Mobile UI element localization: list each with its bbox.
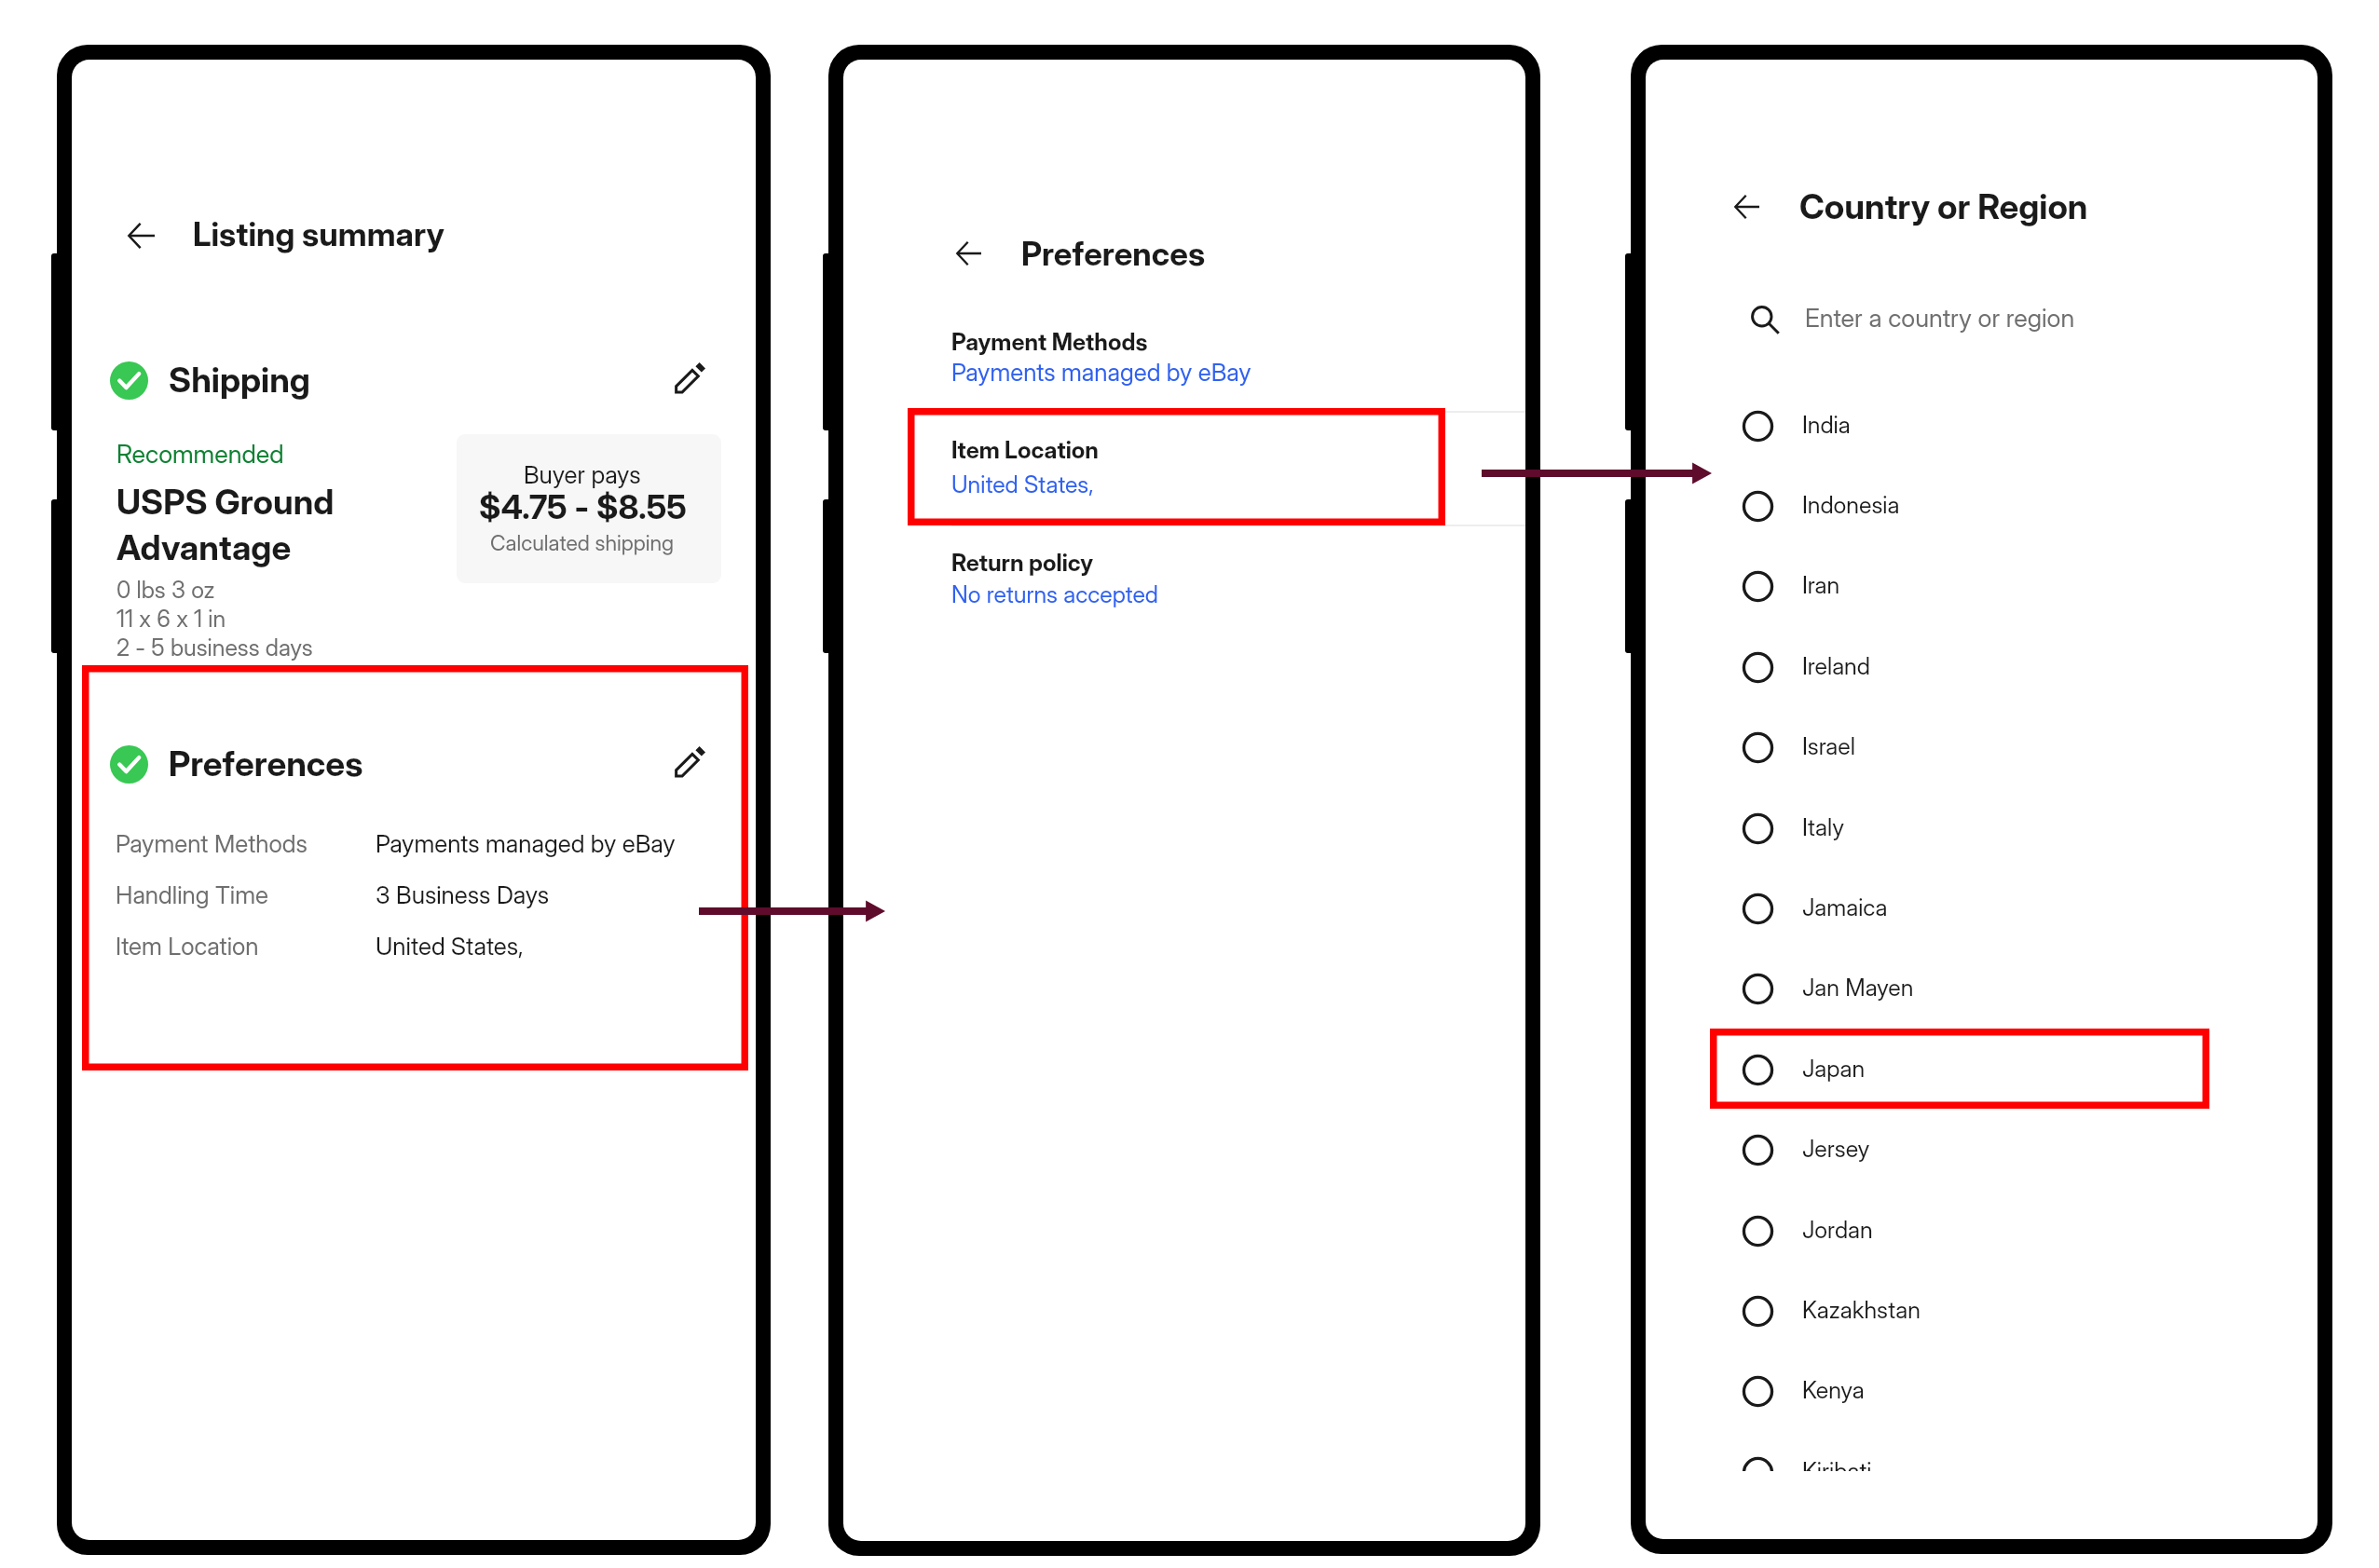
- staticText: Jersey: [1802, 1135, 1870, 1163]
- staticText: Payments managed by eBay: [376, 829, 676, 858]
- staticText: India: [1802, 411, 1851, 439]
- staticText: Handling Time: [116, 880, 268, 909]
- staticText: 2 - 5 business days: [116, 634, 313, 661]
- staticText: Return policy: [951, 549, 1094, 577]
- staticText: Indonesia: [1802, 491, 1900, 519]
- button[interactable]: Japan: [1724, 1029, 2317, 1110]
- button[interactable]: Item Location, United States,: [951, 413, 1525, 525]
- staticText: Calculated shipping: [490, 530, 675, 556]
- staticText: Jan Mayen: [1802, 974, 1914, 1002]
- button[interactable]: Back: [1734, 195, 1759, 219]
- button[interactable]: Indonesia: [1724, 466, 2317, 546]
- staticText: $4.75 - $8.55: [479, 486, 687, 527]
- staticText: 0 lbs 3 oz: [116, 576, 215, 604]
- button[interactable]: Kiribati: [1724, 1432, 2317, 1471]
- button[interactable]: Back: [128, 223, 155, 249]
- button[interactable]: Iran: [1724, 546, 2317, 626]
- button[interactable]: Italy: [1724, 788, 2317, 868]
- button[interactable]: Payment Methods, Payments managed by eBa…: [951, 307, 1525, 411]
- button[interactable]: Jan Mayen: [1724, 948, 2317, 1029]
- staticText: No returns accepted: [951, 580, 1158, 608]
- staticText: Buyer pays: [524, 460, 641, 489]
- staticText: Kenya: [1802, 1376, 1865, 1404]
- staticText: Item Location: [951, 436, 1099, 464]
- staticText: Listing summary: [193, 214, 444, 253]
- button[interactable]: Return policy, No returns accepted: [951, 526, 1525, 629]
- staticText: Payments managed by eBay: [951, 358, 1251, 387]
- staticText: Japan: [1802, 1055, 1866, 1083]
- staticText: 3 Business Days: [376, 880, 550, 909]
- staticText: Preferences: [1021, 234, 1206, 273]
- button[interactable]: Back: [956, 241, 981, 266]
- staticText: Israel: [1802, 732, 1855, 760]
- staticText: United States,: [376, 932, 524, 961]
- staticText: USPS Ground: [116, 481, 335, 523]
- button[interactable]: Jersey: [1724, 1110, 2317, 1190]
- staticText: United States,: [951, 470, 1094, 498]
- button[interactable]: Israel: [1724, 707, 2317, 787]
- button[interactable]: Preferences section: [110, 738, 660, 792]
- staticText: Iran: [1802, 571, 1840, 599]
- staticText: Ireland: [1802, 652, 1870, 680]
- button[interactable]: Ireland: [1724, 627, 2317, 707]
- staticText: Italy: [1802, 813, 1845, 841]
- staticText: Kazakhstan: [1802, 1296, 1921, 1324]
- button[interactable]: Kazakhstan: [1724, 1271, 2317, 1351]
- button[interactable]: Edit: [676, 746, 705, 776]
- staticText: Shipping: [169, 359, 310, 401]
- button[interactable]: Edit: [676, 362, 705, 392]
- staticText: Preferences: [169, 743, 363, 784]
- button[interactable]: Enter a country or region: [1739, 289, 2298, 352]
- staticText: Item Location: [116, 932, 259, 961]
- button[interactable]: Kenya: [1724, 1351, 2317, 1431]
- staticText: Jordan: [1802, 1216, 1873, 1244]
- button[interactable]: Shipping section: [110, 354, 660, 408]
- staticText: Kiribati: [1802, 1457, 1872, 1471]
- button[interactable]: India: [1724, 386, 2317, 466]
- button[interactable]: Search: [1751, 306, 1780, 334]
- staticText: Country or Region: [1799, 185, 2088, 227]
- staticText: Jamaica: [1802, 893, 1888, 921]
- staticText: 11 x 6 x 1 in: [116, 605, 226, 633]
- staticText: Recommended: [116, 439, 284, 470]
- button[interactable]: Jamaica: [1724, 868, 2317, 948]
- staticText: Payment Methods: [116, 829, 308, 858]
- staticText: Enter a country or region: [1805, 303, 2075, 334]
- staticText: Payment Methods: [951, 328, 1148, 356]
- button[interactable]: Jordan: [1724, 1191, 2317, 1271]
- staticText: Advantage: [116, 526, 292, 568]
